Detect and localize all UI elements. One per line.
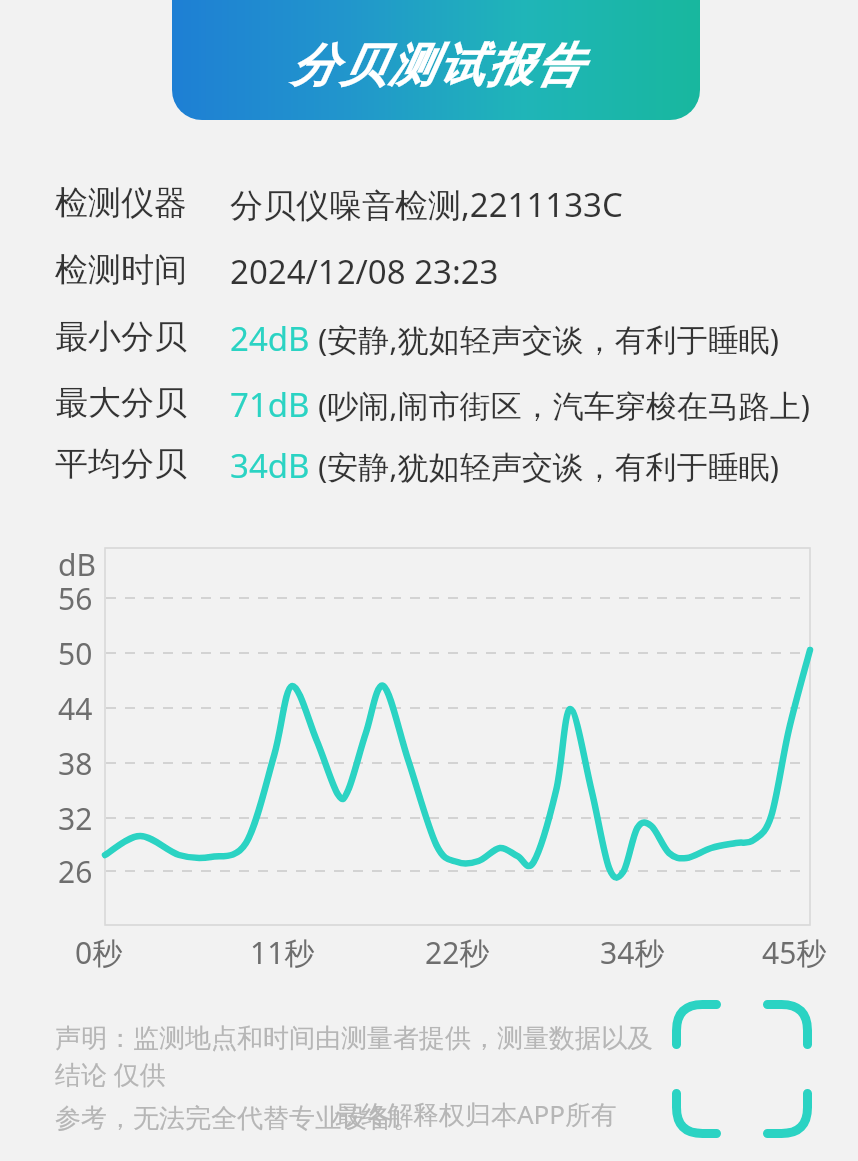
staticText: 34dB (230, 443, 310, 488)
staticText: 参考，无法完全代替专业设备。 (55, 1102, 419, 1135)
staticText: 分贝仪噪音检测,2211133C (230, 182, 623, 227)
staticText: 最小分贝 (55, 316, 187, 358)
staticText: 22秒 (425, 932, 490, 973)
staticText: 检测时间 (55, 249, 187, 291)
staticText: 50 (58, 633, 93, 674)
staticText: 45秒 (762, 932, 827, 973)
staticText: 平均分贝 (55, 443, 187, 485)
button[interactable]: 最小分贝 (0, 316, 858, 362)
staticText: 38 (58, 743, 93, 784)
staticText: 11秒 (250, 932, 315, 973)
staticText: 32 (58, 798, 93, 839)
button[interactable]: 平均分贝 (0, 443, 858, 489)
staticText: 声明：监测地点和时间由测量者提供，测量数据以及结论 仅供 (55, 1022, 655, 1092)
staticText: 0秒 (75, 932, 123, 973)
staticText: 2024/12/08 23:23 (230, 249, 499, 294)
staticText: 最大分贝 (55, 382, 187, 424)
staticText: (吵闹,闹市街区，汽车穿梭在马路上) (310, 384, 810, 426)
staticText: 34秒 (600, 932, 665, 973)
staticText: 71dB (230, 382, 310, 427)
staticText: (安静,犹如轻声交谈，有利于睡眠) (310, 445, 779, 487)
button[interactable]: 分贝测试报告 (172, 0, 700, 120)
staticText: 44 (58, 688, 93, 729)
staticText: 26 (58, 851, 93, 892)
button[interactable]: 检测仪器 (0, 182, 858, 228)
staticText: 56 (58, 578, 93, 619)
staticText: 检测仪器 (55, 182, 187, 224)
staticText: dB (58, 544, 96, 585)
staticText: 最终解释权归本APP所有 (335, 1096, 618, 1132)
button[interactable]: 扫描二维码 (672, 1000, 812, 1138)
staticText: (安静,犹如轻声交谈，有利于睡眠) (310, 318, 779, 360)
button[interactable]: 最大分贝 (0, 382, 858, 428)
staticText: 分贝测试报告 (289, 37, 583, 95)
button[interactable]: 检测时间 (0, 249, 858, 295)
staticText: 24dB (230, 316, 310, 361)
